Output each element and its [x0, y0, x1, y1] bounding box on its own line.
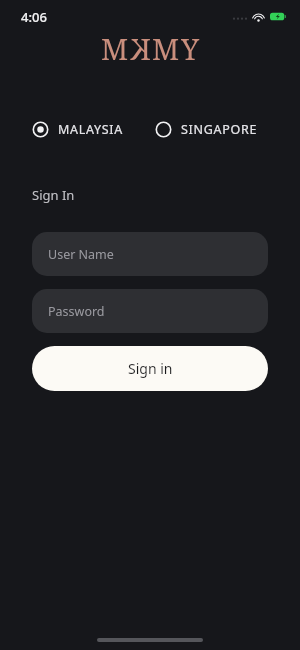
- staticText: M: [101, 29, 129, 65]
- staticText: Sign In: [32, 186, 75, 204]
- staticText: MALAYSIA: [58, 121, 123, 138]
- button[interactable]: User Name: [32, 232, 268, 276]
- staticText: Password: [48, 303, 105, 320]
- staticText: SINGAPORE: [181, 121, 258, 138]
- button[interactable]: SINGAPORE: [153, 116, 260, 143]
- staticText: 4:06: [21, 8, 47, 26]
- staticText: K: [130, 29, 151, 65]
- button[interactable]: Sign in: [32, 346, 268, 391]
- staticText: Sign in: [128, 359, 173, 378]
- staticText: User Name: [48, 246, 114, 263]
- button[interactable]: MALAYSIA: [30, 116, 125, 143]
- staticText: M: [152, 29, 180, 65]
- staticText: Y: [181, 29, 200, 65]
- button[interactable]: Password: [32, 289, 268, 333]
